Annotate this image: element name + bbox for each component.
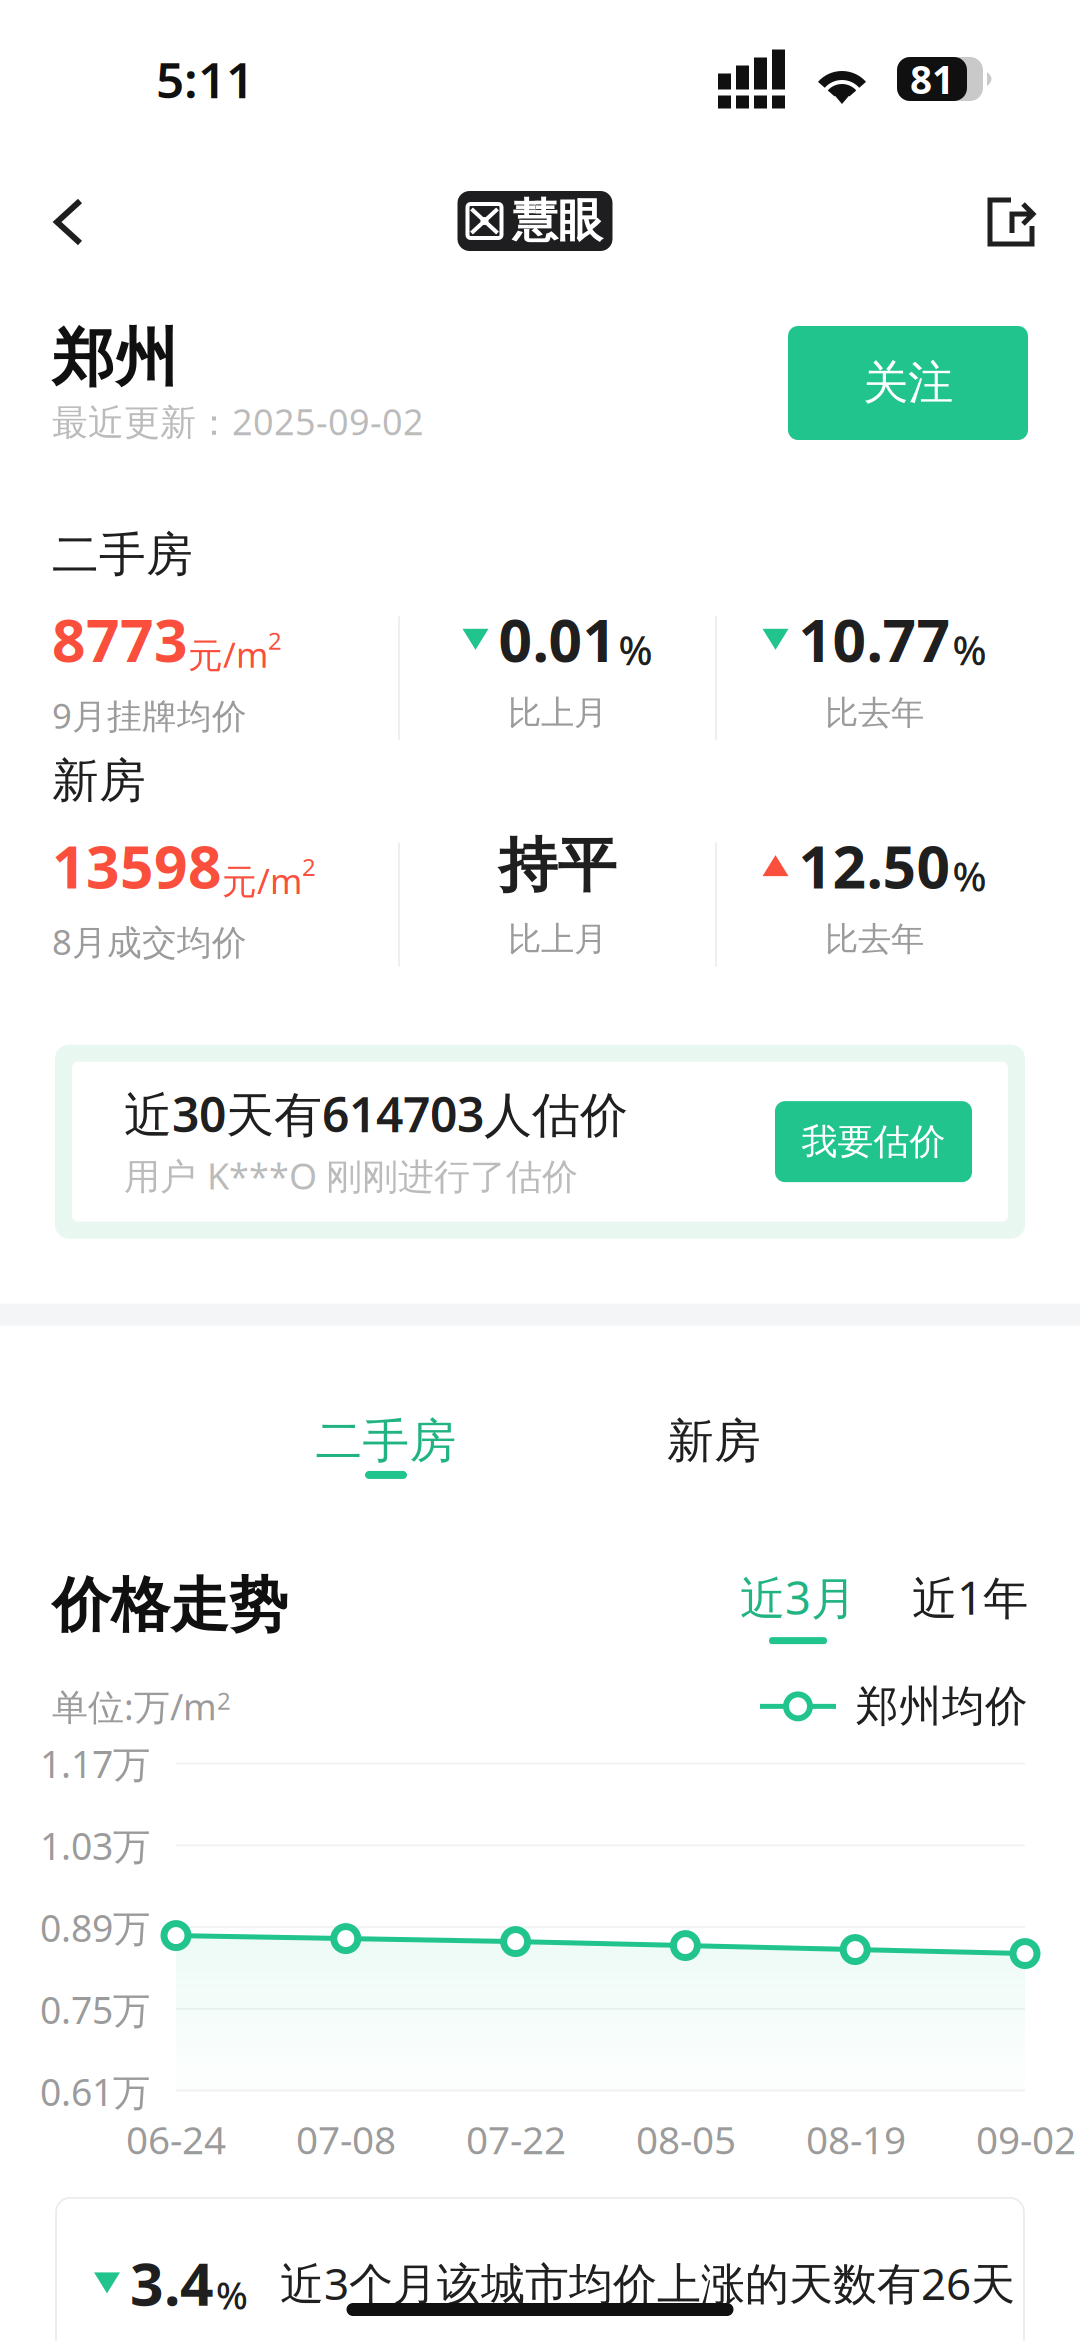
staticText: 5:11 bbox=[156, 46, 254, 112]
staticText: /m bbox=[257, 858, 302, 904]
staticText: 郑州均价 bbox=[856, 1680, 1028, 1733]
staticText: 价格走势 bbox=[52, 1569, 288, 1642]
staticText: 关注 bbox=[863, 355, 953, 411]
staticText: 近3个月该城市均价上涨的天数有26天 bbox=[280, 2254, 1015, 2312]
staticText: 07-22 bbox=[466, 2114, 566, 2165]
staticText: 元 bbox=[188, 635, 223, 677]
staticText: 3.4 bbox=[130, 2244, 214, 2322]
staticText: 1.03万 bbox=[40, 1821, 150, 1870]
staticText: 单位:万/m bbox=[52, 1682, 217, 1730]
staticText: 2 bbox=[217, 1684, 231, 1716]
staticText: 郑州 bbox=[52, 319, 178, 396]
staticText: 慧眼 bbox=[512, 193, 602, 249]
staticText: 08-05 bbox=[636, 2114, 736, 2165]
staticText: 0.61万 bbox=[40, 2067, 150, 2116]
staticText: % bbox=[618, 623, 652, 676]
staticText: % bbox=[952, 623, 986, 676]
staticText: 持平 bbox=[498, 830, 616, 902]
staticText: 新房 bbox=[667, 1413, 761, 1470]
staticText: 我要估价 bbox=[801, 1119, 945, 1164]
staticText: 比去年 bbox=[825, 692, 924, 733]
staticText: 比去年 bbox=[825, 919, 924, 959]
staticText: 元 bbox=[222, 861, 257, 904]
staticText: 10.77 bbox=[798, 600, 950, 678]
staticText: % bbox=[216, 2270, 248, 2320]
staticText: 08-19 bbox=[806, 2114, 906, 2165]
staticText: 9月挂牌均价 bbox=[52, 692, 247, 738]
staticText: 用户 K***O 刚刚进行了估价 bbox=[124, 1152, 578, 1199]
staticText: 0.75万 bbox=[40, 1985, 150, 2034]
staticText: 近30天有614703人估价 bbox=[124, 1082, 628, 1145]
staticText: 13598 bbox=[52, 827, 222, 905]
staticText: 2 bbox=[268, 624, 282, 656]
staticText: 1.17万 bbox=[40, 1739, 150, 1788]
button[interactable]: Share bbox=[961, 158, 1061, 270]
button[interactable]: 近1年 bbox=[856, 1567, 1028, 1644]
staticText: 0.89万 bbox=[40, 1903, 150, 1952]
staticText: 二手房 bbox=[52, 526, 193, 583]
staticText: 06-24 bbox=[126, 2114, 226, 2165]
staticText: 近1年 bbox=[912, 1567, 1028, 1627]
staticText: 比上月 bbox=[508, 692, 607, 733]
staticText: % bbox=[952, 849, 986, 903]
staticText: 新房 bbox=[52, 752, 146, 810]
button[interactable]: 近3月 bbox=[740, 1567, 856, 1644]
button[interactable]: Back bbox=[28, 158, 109, 270]
button[interactable]: 二手房 bbox=[286, 1413, 486, 1479]
staticText: 二手房 bbox=[315, 1413, 456, 1470]
staticText: 09-02 bbox=[976, 2114, 1076, 2165]
staticText: 81 bbox=[910, 53, 954, 105]
staticText: 12.50 bbox=[798, 827, 950, 905]
staticText: 0.01 bbox=[498, 600, 616, 678]
staticText: 近3月 bbox=[740, 1567, 856, 1627]
staticText: 最近更新：2025-09-02 bbox=[52, 397, 424, 445]
button[interactable]: 我要估价 bbox=[775, 1101, 972, 1182]
button[interactable]: 慧眼 bbox=[457, 177, 612, 251]
staticText: 07-08 bbox=[296, 2114, 396, 2165]
staticText: /m bbox=[223, 631, 268, 677]
staticText: 比上月 bbox=[508, 919, 607, 959]
staticText: 8773 bbox=[52, 600, 188, 678]
staticText: 2 bbox=[302, 851, 316, 883]
button[interactable]: 关注 bbox=[788, 326, 1028, 440]
button[interactable]: 新房 bbox=[614, 1413, 814, 1479]
staticText: 8月成交均价 bbox=[52, 919, 247, 965]
